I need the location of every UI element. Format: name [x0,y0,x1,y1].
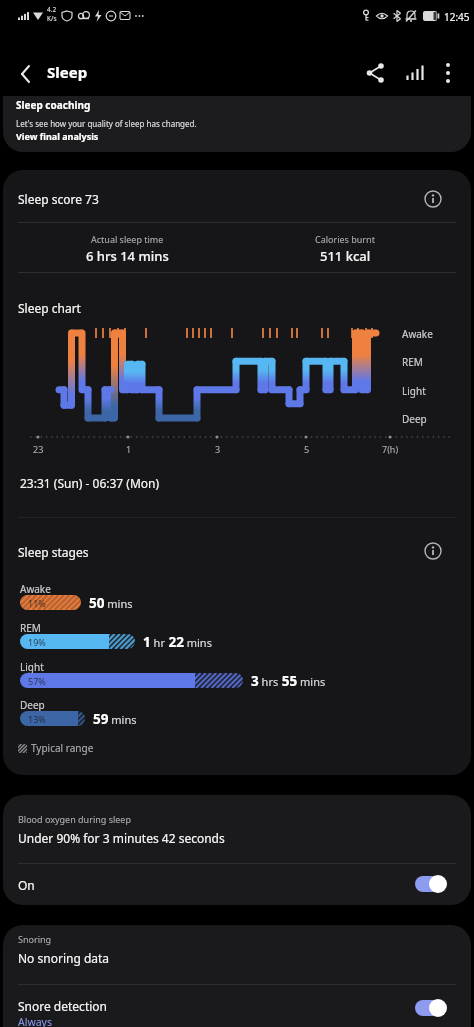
button[interactable] [360,58,390,88]
staticText: Blood oxygen during sleep [18,813,131,825]
staticText: 3 hrs 55 mins [251,672,326,690]
staticText: Sleep coaching [16,98,91,112]
staticText: On [18,877,35,893]
button[interactable] [3,795,471,905]
staticText: K/s [47,14,57,23]
staticText: 3 [215,443,221,455]
button[interactable] [3,865,471,905]
staticText: Sleep [47,62,88,82]
staticText: 59 mins [93,710,137,728]
staticText: Deep [402,412,427,426]
staticText: 511 kcal [320,247,371,265]
staticText: 12:45 [444,10,470,24]
staticText: Sleep stages [18,544,89,560]
staticText: Always [18,1015,52,1027]
staticText: Awake [402,327,433,341]
button[interactable] [415,875,447,893]
staticText: Actual sleep time [91,233,164,245]
staticText: Under 90% for 3 minutes 42 seconds [18,830,225,846]
staticText: REM [402,355,423,369]
button[interactable] [433,58,463,88]
staticText: Deep [20,698,45,712]
staticText: Sleep score 73 [18,191,99,207]
staticText: Light [20,660,44,674]
staticText: 6 hrs 14 mins [86,247,169,265]
staticText: 1 [126,443,132,455]
staticText: 11% [28,597,46,609]
staticText: REM [20,621,41,635]
staticText: Sleep chart [18,300,81,316]
button[interactable] [3,96,471,152]
staticText: 13% [28,713,46,725]
staticText: Snore detection [18,998,107,1014]
staticText: 19% [28,636,46,648]
staticText: No snoring data [18,950,110,966]
staticText: 23 [33,443,44,455]
staticText: Light [402,384,426,398]
button[interactable] [8,56,44,92]
staticText: Calories burnt [315,233,375,245]
button[interactable] [3,986,471,1027]
staticText: 4.2 [47,5,57,14]
button[interactable] [399,58,429,88]
staticText: 5 [304,443,310,455]
staticText: 57% [28,675,46,687]
staticText: 50 mins [89,594,133,612]
staticText: 23:31 (Sun) - 06:37 (Mon) [20,475,160,491]
staticText: 7(h) [382,443,399,455]
staticText: Snoring [18,933,52,945]
button[interactable] [423,541,443,561]
button[interactable] [3,925,471,1027]
staticText: 1 hr 22 mins [143,633,212,651]
button[interactable] [423,189,443,209]
staticText: Let's see how your quality of sleep has … [16,118,197,129]
button[interactable] [415,999,447,1017]
staticText: Awake [20,582,51,596]
staticText: View final analysis [16,130,99,142]
staticText: Typical range [31,741,94,755]
